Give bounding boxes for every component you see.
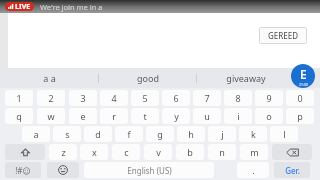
button[interactable]: s [53,126,81,142]
staticText: q [16,110,22,122]
staticText: English (US) [127,165,172,176]
staticText: giveaway [226,72,266,84]
staticText: 3 [80,92,86,104]
staticText: c [124,146,129,158]
button[interactable]: 1 [5,90,33,106]
button[interactable]: w [37,108,65,124]
button[interactable]: 5 [131,90,159,106]
button[interactable]: u [193,108,221,124]
staticText: GEREED [268,30,299,41]
button[interactable]: good [99,68,196,88]
staticText: d [95,128,101,140]
button[interactable]: m [240,144,268,160]
staticText: z [61,146,66,158]
staticText: Ger. [285,165,300,176]
button[interactable]: Backspace [272,144,312,160]
staticText: 9 [266,92,272,104]
staticText: p [297,110,303,122]
button[interactable]: 6 [162,90,190,106]
button[interactable]: Shift [5,144,45,160]
button[interactable]: . [237,162,269,178]
button[interactable]: l [270,126,298,142]
staticText: v [156,146,161,158]
staticText: 7 [204,92,210,104]
button[interactable]: n [208,144,236,160]
button[interactable]: j [208,126,236,142]
staticText: e [80,110,86,122]
button[interactable]: f [115,126,143,142]
staticText: 0 [297,92,303,104]
staticText: s [65,128,70,140]
staticText: 4 [111,92,117,104]
button[interactable]: Profile badge E [291,64,315,88]
button[interactable]: a [22,126,50,142]
button[interactable]: Ger. [274,162,310,178]
staticText: o [266,110,272,122]
button[interactable]: h [177,126,205,142]
staticText: m [250,146,259,158]
staticText: 2 [48,92,54,104]
staticText: j [221,128,224,140]
staticText: t [143,110,147,122]
staticText: x [92,146,97,158]
staticText: 8 [235,92,241,104]
button[interactable]: English (US) [84,162,214,178]
button[interactable]: !#☺ [5,162,41,178]
button[interactable]: 8 [224,90,252,106]
button[interactable]: a a [0,68,98,88]
button[interactable]: 3 [69,90,97,106]
button[interactable]: c [112,144,140,160]
button[interactable]: r [100,108,128,124]
staticText: 6 [173,92,179,104]
staticText: We're join me in a [40,2,103,12]
button[interactable]: d [84,126,112,142]
staticText: f [127,128,131,140]
button[interactable]: b [176,144,204,160]
staticText: a [33,128,39,140]
staticText: k [251,128,256,140]
button[interactable]: k [239,126,267,142]
button[interactable]: q [5,108,33,124]
staticText: 21:00 [299,82,308,87]
button[interactable]: i [224,108,252,124]
staticText: u [204,110,210,122]
button[interactable]: 9 [255,90,283,106]
staticText: E [300,66,307,82]
staticText: l [283,128,286,140]
button[interactable]: Emoji [47,162,79,178]
button[interactable]: 0 [286,90,314,106]
button[interactable]: 4 [100,90,128,106]
staticText: . [252,164,255,176]
staticText: w [47,110,55,122]
staticText: good [137,72,159,84]
button[interactable]: 2 [37,90,65,106]
staticText: 1 [16,92,22,104]
button[interactable]: giveaway [197,68,294,88]
staticText: i [237,110,240,122]
staticText: n [219,146,225,158]
staticText: !#☺ [15,165,31,176]
button[interactable]: g [146,126,174,142]
staticText: LIVE [15,2,31,11]
staticText: b [187,146,193,158]
button[interactable]: GEREED [259,27,307,44]
staticText: 5 [142,92,148,104]
staticText: h [188,128,194,140]
button[interactable]: 7 [193,90,221,106]
button[interactable]: LIVE [8,2,31,11]
button[interactable]: v [144,144,172,160]
staticText: r [112,110,116,122]
button[interactable]: t [131,108,159,124]
staticText: y [174,110,179,122]
staticText: a a [43,72,56,84]
button[interactable]: x [80,144,108,160]
button[interactable]: o [255,108,283,124]
staticText: g [157,128,163,140]
button[interactable]: p [286,108,314,124]
button[interactable]: y [162,108,190,124]
button[interactable]: z [49,144,77,160]
button[interactable]: e [69,108,97,124]
